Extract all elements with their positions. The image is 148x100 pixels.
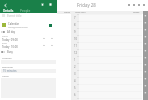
staticText: Calendar xyxy=(8,22,19,26)
staticText: 6 xyxy=(74,93,76,97)
button[interactable]: Scroll xyxy=(142,11,148,100)
staticText: 10 xyxy=(74,37,77,41)
staticText: 8 xyxy=(74,23,76,27)
staticText: Busy xyxy=(7,50,13,54)
staticText: 2 xyxy=(74,65,76,69)
staticText: April 2021 xyxy=(75,11,86,14)
button[interactable]: Starts xyxy=(0,35,57,42)
staticText: 15 minutes xyxy=(3,69,17,73)
button[interactable]: Event title xyxy=(0,13,57,21)
button[interactable]: Window control xyxy=(132,3,136,6)
staticText: 9 xyxy=(74,30,76,34)
button[interactable]: Back xyxy=(1,1,9,9)
staticText: Starts xyxy=(2,35,8,38)
staticText: Ends xyxy=(2,42,7,45)
staticText: Event title xyxy=(7,14,22,18)
staticText: Today xyxy=(133,11,140,14)
staticText: 1 xyxy=(74,58,76,62)
button[interactable]: Calendar xyxy=(0,21,57,29)
staticText: 12 xyxy=(74,51,77,55)
button[interactable]: Busy xyxy=(0,49,57,55)
staticText: Notes xyxy=(2,74,9,77)
staticText: Details xyxy=(3,9,14,13)
staticText: Today 09:00 xyxy=(2,38,18,42)
staticText: 11 xyxy=(74,44,77,48)
staticText: 3 xyxy=(74,72,76,76)
staticText: Location xyxy=(2,56,12,59)
button[interactable]: Window control xyxy=(127,3,131,6)
button[interactable]: All day xyxy=(0,29,57,35)
staticText: Week xyxy=(64,11,70,14)
staticText: 7 xyxy=(74,16,76,20)
staticText: 4 xyxy=(74,79,76,83)
button[interactable]: Ends xyxy=(0,42,57,49)
staticText: People xyxy=(20,9,31,13)
button[interactable]: Save xyxy=(47,1,54,8)
staticText: name@outlook.com xyxy=(8,26,28,29)
staticText: 5 xyxy=(74,86,76,90)
staticText: Friday 28 xyxy=(77,2,96,8)
button[interactable]: Window control xyxy=(137,3,141,6)
staticText: Today 10:00 xyxy=(2,45,18,49)
staticText: All day xyxy=(7,30,16,34)
staticText: Reminder xyxy=(2,65,13,68)
button[interactable]: Delete xyxy=(39,1,46,8)
button[interactable]: Details xyxy=(0,8,17,13)
button[interactable]: People xyxy=(17,8,34,13)
button[interactable]: 15 minutes xyxy=(1,69,56,73)
button[interactable]: Window control xyxy=(142,3,146,6)
